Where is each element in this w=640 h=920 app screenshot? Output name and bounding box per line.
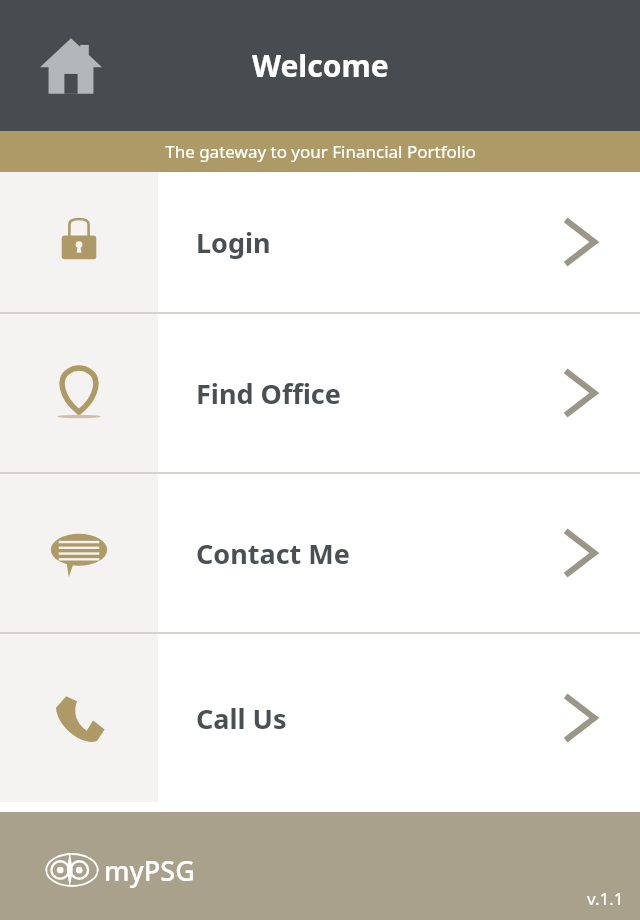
staticText: Find Office xyxy=(196,375,341,412)
staticText: myPSG xyxy=(104,852,195,889)
button[interactable]: Find Office xyxy=(0,314,640,472)
button[interactable]: Home xyxy=(38,33,104,99)
button[interactable]: Login xyxy=(0,172,640,312)
staticText: v.1.1 xyxy=(587,887,624,910)
staticText: Welcome xyxy=(252,45,389,86)
button[interactable]: Contact Me xyxy=(0,474,640,632)
button[interactable]: Call Us xyxy=(0,634,640,802)
staticText: The gateway to your Financial Portfolio xyxy=(165,140,476,163)
staticText: Call Us xyxy=(196,700,287,737)
staticText: Login xyxy=(196,224,271,261)
staticText: Contact Me xyxy=(196,535,350,572)
